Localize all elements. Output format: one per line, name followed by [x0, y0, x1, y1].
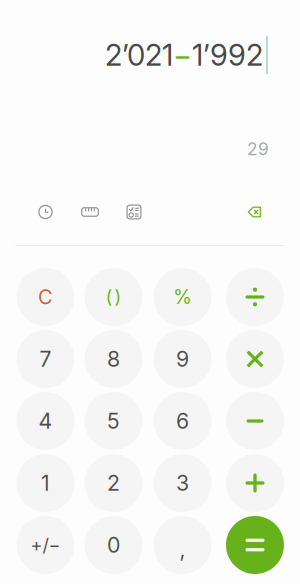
- button[interactable]: C: [16, 268, 74, 326]
- button[interactable]: Unit converter: [68, 198, 112, 226]
- button[interactable]: 3: [153, 454, 211, 512]
- staticText: 29: [247, 138, 269, 159]
- button[interactable]: %: [153, 268, 211, 326]
- staticText: 2: [107, 470, 120, 496]
- button[interactable]: Minus: [226, 392, 284, 450]
- button[interactable]: 7: [16, 330, 74, 388]
- button[interactable]: 9: [153, 330, 211, 388]
- button[interactable]: History: [23, 198, 68, 226]
- button[interactable]: 0: [84, 516, 142, 574]
- staticText: %: [173, 285, 192, 309]
- staticText: 3: [176, 470, 189, 496]
- staticText: −: [173, 37, 192, 73]
- staticText: 4: [38, 408, 52, 434]
- staticText: 6: [176, 408, 189, 434]
- button[interactable]: ,: [153, 516, 211, 574]
- button[interactable]: 1: [16, 454, 74, 512]
- button[interactable]: 8: [84, 330, 142, 388]
- button[interactable]: 5: [84, 392, 142, 450]
- staticText: 8: [107, 346, 120, 372]
- staticText: 2’021: [105, 37, 173, 73]
- staticText: 5: [107, 408, 120, 434]
- staticText: 1: [41, 470, 50, 496]
- button[interactable]: Plus: [226, 454, 284, 512]
- staticText: +/−: [30, 534, 60, 556]
- button[interactable]: Parentheses: [84, 268, 142, 326]
- button[interactable]: Multiply: [226, 330, 284, 388]
- staticText: ,: [179, 536, 185, 562]
- button[interactable]: 2: [84, 454, 142, 512]
- staticText: (: [105, 286, 112, 308]
- staticText: 1’992: [192, 37, 263, 73]
- button[interactable]: 6: [153, 392, 211, 450]
- staticText: ): [114, 286, 121, 308]
- button[interactable]: 4: [16, 392, 74, 450]
- staticText: 9: [176, 346, 189, 372]
- button[interactable]: Delete: [233, 198, 277, 226]
- staticText: 0: [107, 532, 120, 558]
- staticText: C: [38, 285, 53, 309]
- button[interactable]: Divide: [226, 268, 284, 326]
- button[interactable]: Equals: [226, 516, 284, 574]
- button[interactable]: +/−: [16, 516, 74, 574]
- button[interactable]: Scientific calculator: [112, 198, 156, 226]
- staticText: 7: [39, 346, 51, 372]
